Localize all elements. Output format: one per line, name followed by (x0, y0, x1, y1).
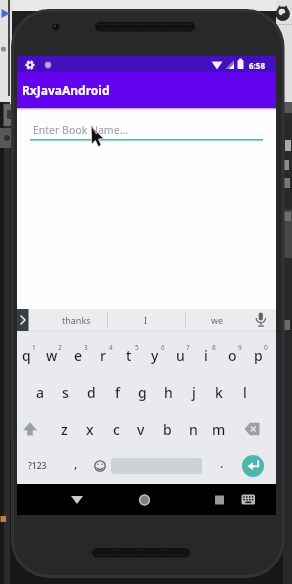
staticText: w (46, 346, 58, 365)
button[interactable]: o (220, 340, 244, 370)
button[interactable]: x (78, 414, 102, 444)
staticText: . (220, 455, 224, 472)
button[interactable]: ?123 (23, 453, 51, 479)
staticText: 8 (212, 343, 216, 352)
staticText: we (211, 314, 224, 326)
button[interactable]: k (207, 377, 231, 407)
staticText: n (189, 420, 198, 439)
staticText: , (74, 455, 78, 472)
button[interactable]: b (155, 414, 179, 444)
button[interactable]: u (168, 340, 192, 370)
button[interactable]: v (129, 414, 153, 444)
staticText: c (113, 420, 120, 439)
button[interactable]: n (181, 414, 205, 444)
button[interactable]: s (53, 377, 77, 407)
staticText: 5 (135, 343, 139, 352)
button[interactable]: w (40, 340, 64, 370)
button[interactable] (238, 486, 262, 513)
staticText: e (74, 346, 83, 365)
staticText: 3 (84, 343, 88, 352)
button[interactable]: q (14, 340, 38, 370)
staticText: r (100, 346, 106, 365)
staticText: b (163, 420, 172, 439)
staticText: 9 (238, 343, 242, 352)
staticText: 6 (161, 343, 165, 352)
staticText: k (215, 383, 223, 402)
staticText: I (144, 314, 148, 326)
button[interactable]: we (189, 309, 245, 331)
button[interactable] (250, 309, 276, 331)
staticText: g (138, 383, 147, 402)
button[interactable]: y (143, 340, 167, 370)
button[interactable]: thanks (41, 309, 111, 331)
button[interactable]: e (66, 340, 90, 370)
staticText: ?123 (28, 460, 47, 472)
button[interactable]: l (233, 377, 257, 407)
staticText: l (243, 383, 247, 402)
staticText: 1 (32, 343, 36, 352)
staticText: 4 (109, 343, 113, 352)
staticText: z (61, 420, 68, 439)
button[interactable]: c (104, 414, 128, 444)
button[interactable]: g (130, 377, 154, 407)
button[interactable]: Enter Book Name... (30, 116, 263, 142)
staticText: m (212, 420, 226, 439)
button[interactable] (128, 486, 164, 513)
button[interactable] (60, 486, 96, 513)
button[interactable]: , (66, 450, 86, 476)
button[interactable]: h (156, 377, 180, 407)
staticText: i (204, 346, 208, 365)
staticText: t (126, 346, 132, 365)
staticText: a (36, 383, 45, 402)
staticText: y (151, 346, 159, 365)
staticText: Enter Book Name... (33, 123, 129, 137)
button[interactable]: . (212, 450, 232, 476)
button[interactable] (17, 309, 29, 331)
staticText: thanks (62, 314, 91, 326)
staticText: o (228, 346, 237, 365)
staticText: 6:58 (249, 60, 265, 71)
staticText: p (254, 346, 263, 365)
button[interactable] (242, 455, 264, 477)
staticText: RxJavaAndroid (22, 82, 110, 98)
button[interactable]: a (28, 377, 52, 407)
button[interactable]: z (52, 414, 76, 444)
staticText: q (22, 346, 31, 365)
button[interactable]: d (79, 377, 103, 407)
button[interactable]: i (194, 340, 218, 370)
staticText: 7 (186, 343, 190, 352)
button[interactable]: t (117, 340, 141, 370)
button[interactable]: RxJavaAndroid (0, 0, 292, 584)
staticText: f (115, 383, 120, 402)
staticText: v (137, 420, 145, 439)
staticText: d (87, 383, 96, 402)
staticText: 2 (58, 343, 62, 352)
staticText: s (62, 383, 69, 402)
button[interactable]: f (105, 377, 129, 407)
button[interactable] (90, 453, 110, 479)
button[interactable]: p (246, 340, 270, 370)
button[interactable]: j (182, 377, 206, 407)
button[interactable] (240, 415, 266, 443)
staticText: x (86, 420, 94, 439)
button[interactable] (198, 486, 234, 513)
staticText: 0 (264, 343, 268, 352)
button[interactable]: I (111, 309, 181, 331)
staticText: u (176, 346, 185, 365)
button[interactable]: r (91, 340, 115, 370)
staticText: j (192, 383, 196, 402)
staticText: h (164, 383, 173, 402)
button[interactable] (18, 415, 44, 443)
button[interactable]: m (207, 414, 231, 444)
